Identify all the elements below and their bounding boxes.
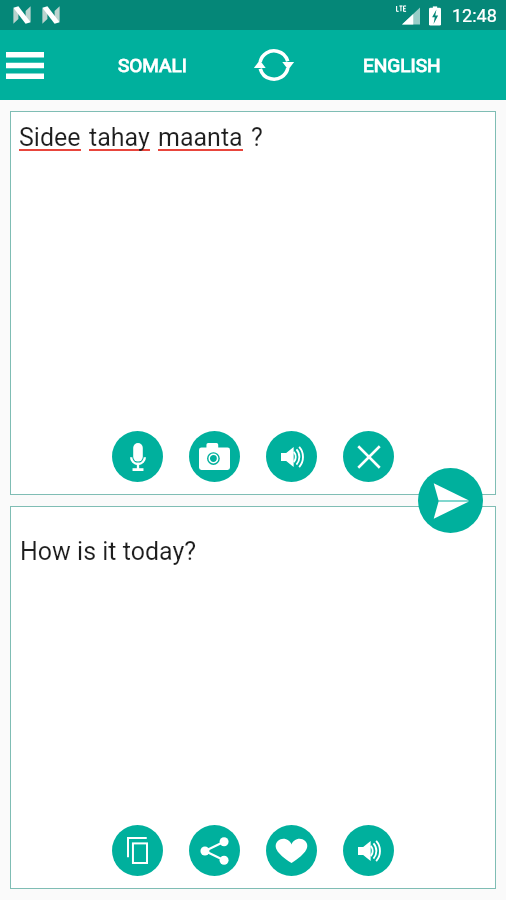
staticText: tahay [89,123,150,152]
staticText: Sidee [19,123,81,152]
button[interactable]: ENGLISH [340,30,463,100]
button[interactable]: Translate [418,468,483,533]
button[interactable]: Listen [343,825,394,876]
button[interactable]: Camera input [189,431,240,482]
staticText: ? [251,123,263,152]
button[interactable]: Share translation [189,825,240,876]
button[interactable]: Add to favourites [266,825,317,876]
button[interactable]: Open navigation menu [0,30,50,100]
staticText: SOMALI [118,54,187,76]
staticText: maanta [158,123,243,152]
staticText: 12:48 [452,5,497,26]
button[interactable]: Clear text [343,431,394,482]
button[interactable]: SOMALI [95,30,210,100]
button[interactable]: Copy translation [112,825,163,876]
button[interactable]: Listen [266,431,317,482]
button[interactable]: Speak with microphone [112,431,163,482]
button[interactable]: Swap languages [248,39,300,91]
staticText: How is it today? [20,537,197,566]
staticText: ENGLISH [363,54,441,76]
